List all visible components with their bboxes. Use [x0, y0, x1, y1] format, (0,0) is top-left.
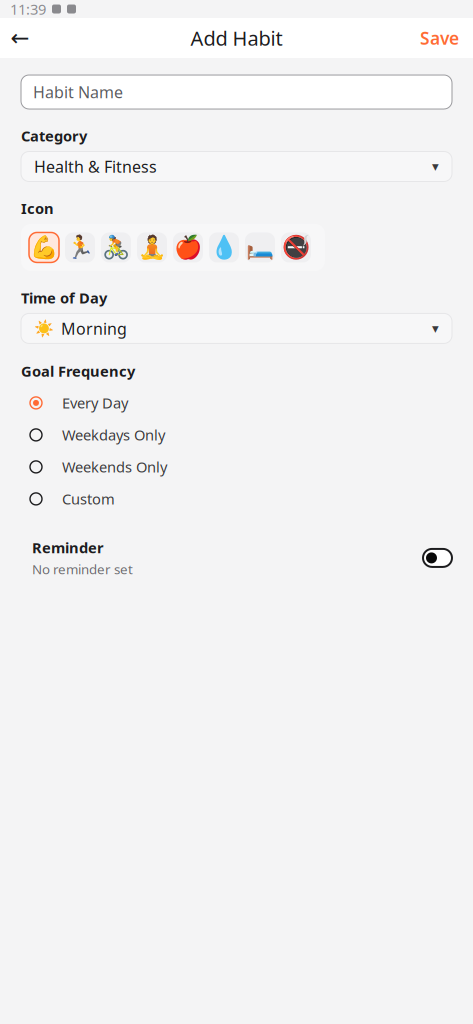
staticText: Add Habit	[190, 25, 282, 51]
staticText: Health & Fitness	[34, 156, 157, 177]
staticText: Icon	[21, 198, 54, 218]
staticText: Save	[420, 26, 459, 49]
button[interactable]: Back	[0, 18, 40, 58]
staticText: 🧘	[138, 234, 166, 260]
staticText: Morning	[61, 318, 127, 339]
staticText: 🍎	[174, 234, 202, 260]
button[interactable]: Icon 5	[173, 232, 203, 262]
button[interactable]: Weekdays Only	[21, 419, 452, 451]
staticText: ←	[10, 25, 29, 51]
staticText: Category	[21, 126, 87, 145]
button[interactable]: Icon 8	[281, 232, 311, 262]
button[interactable]: Every Day	[21, 387, 452, 419]
staticText: Reminder	[32, 538, 104, 557]
button[interactable]: ☀️	[21, 313, 452, 343]
staticText: Weekends Only	[62, 457, 167, 477]
staticText: ▾	[432, 321, 439, 336]
button[interactable]: Health & Fitness	[21, 151, 452, 181]
staticText: 🛏️	[246, 234, 274, 260]
button[interactable]: Reminder	[21, 541, 452, 575]
staticText: Custom	[62, 489, 115, 509]
staticText: Time of Day	[21, 288, 107, 307]
button[interactable]: Icon 2	[65, 232, 95, 262]
staticText: ▾	[432, 159, 439, 174]
staticText: 🚭	[282, 234, 310, 260]
button[interactable]: Habit Name	[21, 75, 452, 109]
staticText: No reminder set	[32, 560, 133, 578]
staticText: 💧	[210, 234, 238, 260]
button[interactable]: Icon 1	[29, 232, 59, 262]
button[interactable]: Icon 7	[245, 232, 275, 262]
staticText: 💪	[30, 234, 58, 260]
staticText: Every Day	[62, 393, 128, 413]
button[interactable]: Custom	[21, 483, 452, 515]
staticText: 11:39	[10, 0, 46, 19]
staticText: 🏃	[66, 234, 94, 260]
staticText: Weekdays Only	[62, 425, 165, 445]
staticText: 🚴	[102, 234, 130, 260]
button[interactable]: Weekends Only	[21, 451, 452, 483]
staticText: ☀️	[34, 319, 54, 338]
staticText: Goal Frequency	[21, 361, 135, 381]
button[interactable]: Icon 3	[101, 232, 131, 262]
button[interactable]: Save	[406, 18, 473, 58]
button[interactable]: Icon 4	[137, 232, 167, 262]
staticText: Habit Name	[33, 81, 123, 103]
button[interactable]: Icon 6	[209, 232, 239, 262]
